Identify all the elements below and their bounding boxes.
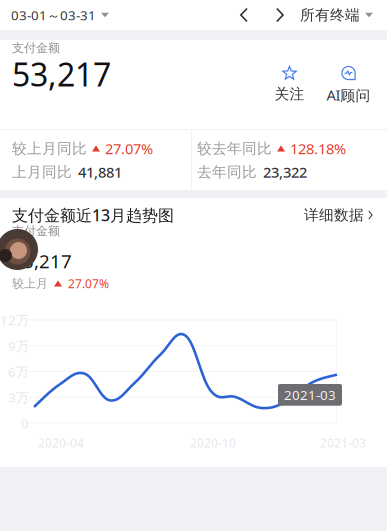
button[interactable]: 所有终端 [300,0,387,30]
staticText: 详细数据 [304,206,364,224]
staticText: 9万 [8,337,29,355]
staticText: 2021-03 [320,435,366,451]
staticText: 2020-04 [38,435,84,451]
button[interactable]: 上一个时间段 [229,0,259,30]
staticText: 2021-03 [284,386,336,404]
staticText: AI顾问 [326,85,370,105]
staticText: 去年同比 [197,163,257,181]
staticText: 关注 [274,85,304,103]
staticText: 41,881 [78,162,122,182]
staticText: 较上月同比 [12,139,87,157]
staticText: 128.18% [290,139,346,158]
staticText: 较去年同比 [197,139,272,157]
staticText: 27.07% [68,275,109,291]
staticText: 支付金额近13月趋势图 [12,204,174,226]
staticText: 0 [21,414,29,432]
staticText: 3万 [8,388,29,406]
staticText: 27.07% [105,139,153,158]
button[interactable]: 03-01～03-31 [0,0,119,30]
staticText: 所有终端 [300,6,360,24]
button[interactable]: 详细数据 [304,203,373,227]
button[interactable]: 关注 [262,40,317,129]
staticText: 23,322 [263,162,307,182]
staticText: 03-01～03-31 [11,6,96,24]
staticText: 53,217 [12,249,72,273]
staticText: 支付金额 [12,41,60,55]
button[interactable]: AI顾问 [317,40,380,129]
staticText: 支付金额 [12,224,60,238]
staticText: 53,217 [12,53,111,95]
button[interactable]: 下一个时间段 [265,0,295,30]
staticText: 12万 [0,311,29,329]
staticText: 上月同比 [12,163,72,181]
staticText: 2020-10 [190,435,236,451]
staticText: 较上月 [12,276,48,291]
staticText: 6万 [8,363,29,380]
